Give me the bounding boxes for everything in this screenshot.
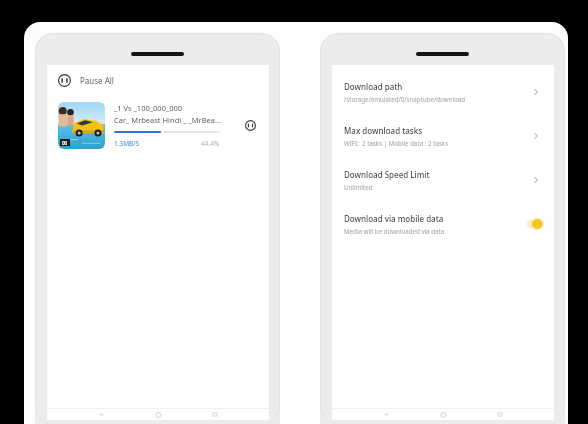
button[interactable]: Back (383, 412, 389, 417)
staticText: Max download tasks (344, 125, 423, 136)
button[interactable]: Max download tasks (332, 123, 554, 149)
other: Download Speed Limit (529, 173, 543, 187)
staticText: 44.4% (201, 139, 220, 148)
button[interactable]: Download via mobile data toggle (523, 218, 543, 230)
staticText: DI (62, 140, 68, 146)
other: Max download tasks (529, 129, 543, 143)
staticText: 1.3MB/S (114, 139, 140, 148)
button[interactable]: Pause All (47, 65, 269, 95)
staticText: Download path (344, 81, 403, 92)
button[interactable]: DI (47, 95, 269, 155)
staticText: Pause All (80, 75, 114, 86)
button[interactable]: Recent apps (497, 412, 503, 417)
staticText: WIFI: 2 tasks | Mobile data : 2 tasks (344, 139, 449, 147)
staticText: Unlimited (344, 183, 373, 191)
button[interactable]: Recent apps (212, 412, 218, 417)
button[interactable]: Download Speed Limit (332, 167, 554, 193)
staticText: Download Speed Limit (344, 169, 430, 180)
button[interactable]: Download path (332, 79, 554, 105)
staticText: Car_ Mrbeast Hindi _ _MrBea… (114, 115, 221, 125)
staticText: _1 Vs _100_000_000 (114, 103, 183, 113)
button[interactable]: Home (155, 412, 162, 418)
other: Download path (529, 85, 543, 99)
staticText: Media will be downloaded via data (344, 227, 445, 235)
button[interactable]: Back (98, 412, 104, 417)
staticText: /storage/emulated/0/snaptube/download (344, 95, 466, 103)
button[interactable]: Home (440, 412, 447, 418)
staticText: Download via mobile data (344, 213, 444, 224)
button[interactable]: Download via mobile data (332, 211, 554, 237)
button[interactable]: Pause download (239, 114, 261, 136)
